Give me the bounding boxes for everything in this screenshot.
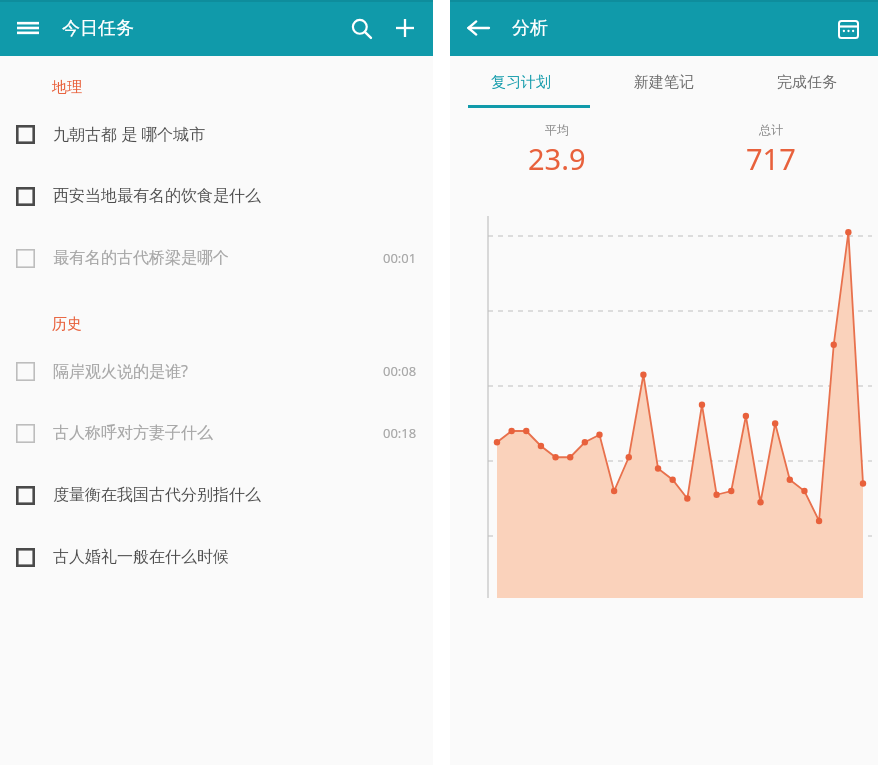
button[interactable]: 九朝古都 是 哪个城市 — [0, 103, 433, 165]
button[interactable]: Add task — [383, 6, 427, 50]
staticText: 新建笔记 — [634, 73, 694, 92]
button[interactable]: 复习计划 — [450, 56, 592, 108]
staticText: 历史 — [52, 315, 82, 334]
staticText: 最有名的古代桥梁是哪个 — [53, 248, 383, 268]
button[interactable]: Menu — [6, 6, 50, 50]
button[interactable]: 新建笔记 — [592, 56, 735, 108]
button[interactable]: 古人称呼对方妻子什么 — [0, 402, 433, 464]
staticText: 00:08 — [383, 362, 417, 380]
staticText: 717 — [746, 139, 796, 178]
button[interactable]: 古人婚礼一般在什么时候 — [0, 526, 433, 588]
staticText: 复习计划 — [491, 73, 551, 92]
button[interactable]: 度量衡在我国古代分别指什么 — [0, 464, 433, 526]
staticText: 西安当地最有名的饮食是什么 — [53, 186, 417, 206]
button[interactable]: 隔岸观火说的是谁? — [0, 340, 433, 402]
staticText: 00:01 — [383, 249, 417, 267]
staticText: 分析 — [512, 17, 548, 40]
staticText: 平均 — [545, 122, 569, 137]
staticText: 古人婚礼一般在什么时候 — [53, 547, 417, 567]
staticText: 地理 — [52, 78, 82, 97]
staticText: 总计 — [759, 122, 783, 137]
staticText: 古人称呼对方妻子什么 — [53, 423, 383, 443]
staticText: 完成任务 — [777, 73, 837, 92]
button[interactable]: 西安当地最有名的饮食是什么 — [0, 165, 433, 227]
button[interactable]: 最有名的古代桥梁是哪个 — [0, 227, 433, 289]
button[interactable]: Calendar — [826, 6, 870, 50]
staticText: 23.9 — [528, 139, 586, 178]
staticText: 00:18 — [383, 424, 417, 442]
button[interactable]: 完成任务 — [735, 56, 878, 108]
staticText: 九朝古都 是 哪个城市 — [53, 123, 417, 145]
staticText: 今日任务 — [62, 17, 134, 40]
button[interactable]: Search — [339, 6, 383, 50]
staticText: 隔岸观火说的是谁? — [53, 360, 383, 382]
button[interactable]: Back — [456, 6, 500, 50]
staticText: 度量衡在我国古代分别指什么 — [53, 485, 417, 505]
